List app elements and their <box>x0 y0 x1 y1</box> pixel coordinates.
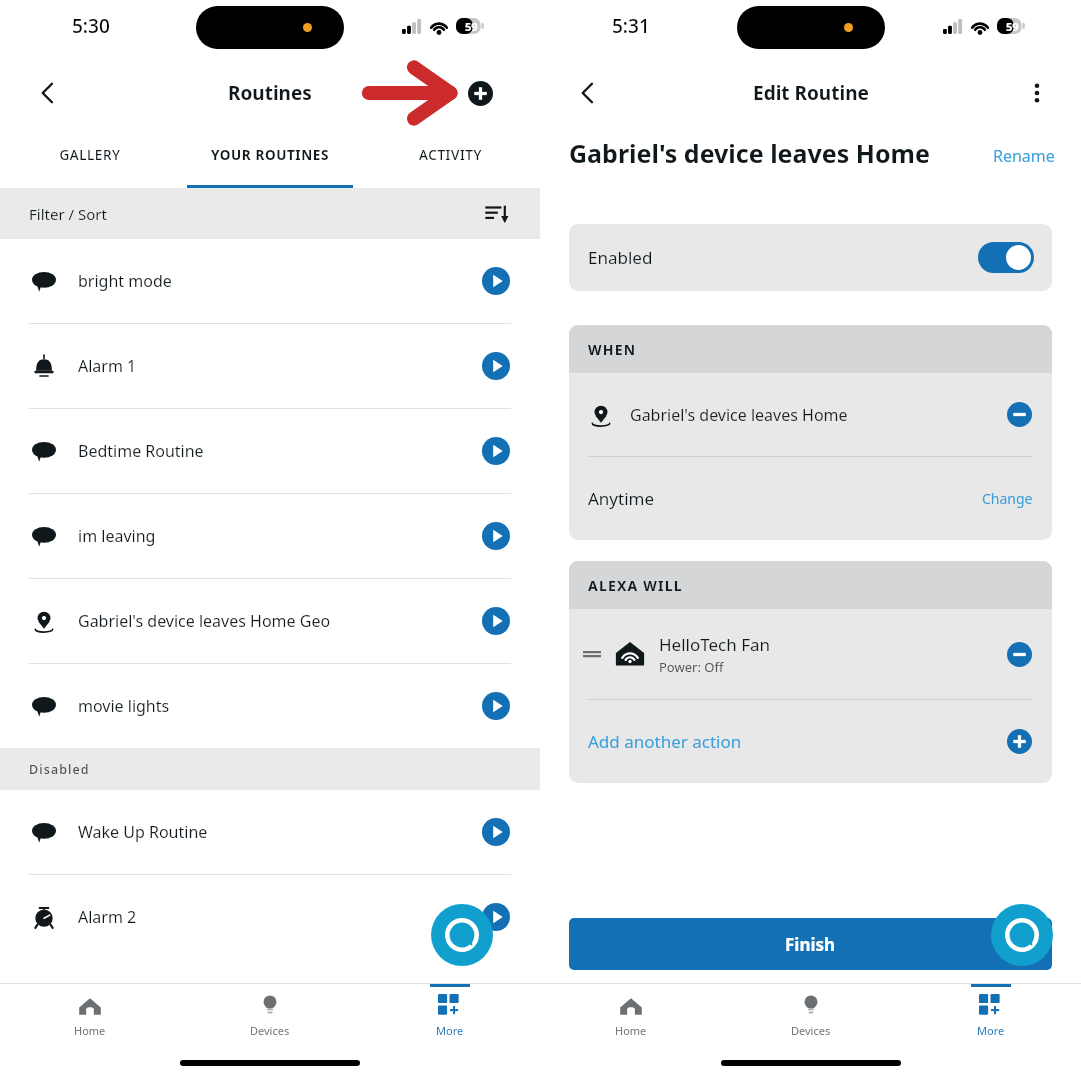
button[interactable]: More <box>360 984 540 1046</box>
button[interactable]: Play bright mode <box>481 266 511 296</box>
staticText: 59 <box>1006 19 1019 34</box>
button[interactable]: Filter / Sort <box>0 188 540 239</box>
button[interactable]: Gabriel's device leaves Home Geo <box>0 579 540 664</box>
staticText: Gabriel's device leaves Home Geo <box>78 610 481 632</box>
button[interactable]: im leaving <box>0 494 540 579</box>
button[interactable]: Wake Up Routine <box>0 790 540 875</box>
button[interactable]: Remove <box>1006 401 1033 428</box>
staticText: Devices <box>250 1023 290 1038</box>
button[interactable]: Rename <box>993 145 1055 167</box>
staticText: Change <box>982 489 1033 508</box>
staticText: Routines <box>228 80 312 106</box>
button[interactable]: Alarm 1 <box>0 324 540 409</box>
button[interactable]: Home <box>0 984 180 1046</box>
button[interactable]: Remove <box>1006 641 1033 668</box>
staticText: Edit Routine <box>753 80 869 106</box>
button[interactable]: HelloTech Fan <box>583 609 1033 699</box>
staticText: Finish <box>785 933 836 956</box>
staticText: Filter / Sort <box>29 204 107 224</box>
staticText: More <box>977 1023 1005 1038</box>
button[interactable]: Play Wake Up Routine <box>481 817 511 847</box>
button[interactable]: Finish <box>569 918 1052 970</box>
staticText: More <box>436 1023 464 1038</box>
button[interactable]: More <box>901 984 1081 1046</box>
button[interactable]: GALLERY <box>0 130 180 188</box>
button[interactable]: Devices <box>180 984 360 1046</box>
staticText: Home <box>615 1023 647 1038</box>
button[interactable]: Play Bedtime Routine <box>481 436 511 466</box>
button[interactable]: Add routine <box>460 73 500 113</box>
staticText: Gabriel's device leaves Home <box>569 136 985 170</box>
button[interactable]: Alexa <box>431 904 493 966</box>
button[interactable]: Add another action <box>588 700 1033 783</box>
button[interactable]: Add action <box>1006 728 1033 755</box>
staticText: YOUR ROUTINES <box>211 146 329 164</box>
button[interactable]: Alarm 2 <box>0 875 540 959</box>
staticText: Bedtime Routine <box>78 440 481 462</box>
button[interactable]: Alexa <box>991 904 1053 966</box>
staticText: Enabled <box>588 246 653 269</box>
staticText: Alarm 2 <box>78 906 481 928</box>
staticText: Add another action <box>588 730 1006 753</box>
staticText: Gabriel's device leaves Home <box>630 404 1006 426</box>
staticText: Rename <box>993 145 1055 167</box>
button[interactable]: Enabled <box>569 224 1052 291</box>
button[interactable]: Anytime <box>588 457 1033 540</box>
staticText: Wake Up Routine <box>78 821 481 843</box>
staticText: HelloTech Fan <box>659 633 771 656</box>
button[interactable]: Back <box>566 71 610 115</box>
button[interactable]: Bedtime Routine <box>0 409 540 494</box>
staticText: ALEXA WILL <box>588 576 683 595</box>
button[interactable]: ACTIVITY <box>360 130 540 188</box>
staticText: Home <box>74 1023 106 1038</box>
button[interactable]: Back <box>26 71 70 115</box>
button[interactable]: Devices <box>721 984 901 1046</box>
button[interactable]: Home <box>540 984 721 1046</box>
button[interactable]: Play movie lights <box>481 691 511 721</box>
button[interactable]: YOUR ROUTINES <box>180 130 360 188</box>
button[interactable]: Play Alarm 2 <box>481 902 511 932</box>
button[interactable]: Play im leaving <box>481 521 511 551</box>
button[interactable]: bright mode <box>0 239 540 324</box>
staticText: Anytime <box>588 487 982 510</box>
button[interactable]: Play Alarm 1 <box>481 351 511 381</box>
staticText: Alarm 1 <box>78 355 481 377</box>
staticText: 5:30 <box>72 13 110 39</box>
staticText: Disabled <box>29 761 90 778</box>
staticText: Power: Off <box>659 658 724 676</box>
staticText: movie lights <box>78 695 481 717</box>
staticText: bright mode <box>78 270 481 292</box>
staticText: 59 <box>465 19 478 34</box>
button[interactable]: Play Gabriel's device leaves Home Geo <box>481 606 511 636</box>
staticText: GALLERY <box>59 146 121 164</box>
staticText: WHEN <box>588 340 637 359</box>
staticText: ACTIVITY <box>419 146 482 164</box>
button[interactable]: Gabriel's device leaves Home <box>588 373 1033 456</box>
button[interactable]: movie lights <box>0 664 540 748</box>
staticText: 5:31 <box>612 13 650 39</box>
staticText: im leaving <box>78 525 481 547</box>
button[interactable]: More options <box>1015 71 1059 115</box>
staticText: Devices <box>791 1023 831 1038</box>
